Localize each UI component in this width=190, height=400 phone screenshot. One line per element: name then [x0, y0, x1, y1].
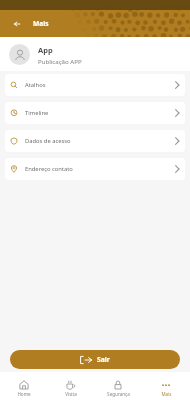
- staticText: Atalhos: [25, 81, 46, 89]
- staticText: Home: [17, 391, 31, 397]
- staticText: Timeline: [25, 109, 49, 117]
- staticText: Visita: [65, 391, 77, 397]
- button[interactable]: Timeline: [5, 102, 185, 124]
- button[interactable]: Sair: [10, 350, 180, 369]
- button[interactable]: App: [0, 37, 190, 71]
- staticText: Sair: [97, 355, 110, 364]
- staticText: Mais: [161, 391, 172, 397]
- staticText: App: [38, 45, 53, 55]
- staticText: Segurança: [107, 391, 130, 397]
- button[interactable]: Dados de acesso: [5, 130, 185, 152]
- button[interactable]: Mais: [142, 372, 190, 400]
- staticText: Mais: [33, 19, 49, 28]
- button[interactable]: Atalhos: [5, 74, 185, 96]
- button[interactable]: Back: [6, 13, 28, 35]
- staticText: Publicação APP: [38, 57, 82, 65]
- staticText: Endereço contato: [25, 165, 73, 173]
- button[interactable]: Endereço contato: [5, 158, 185, 180]
- button[interactable]: Visita: [47, 372, 94, 400]
- button[interactable]: Home: [0, 372, 47, 400]
- staticText: Dados de acesso: [25, 137, 71, 145]
- button[interactable]: Segurança: [94, 372, 142, 400]
